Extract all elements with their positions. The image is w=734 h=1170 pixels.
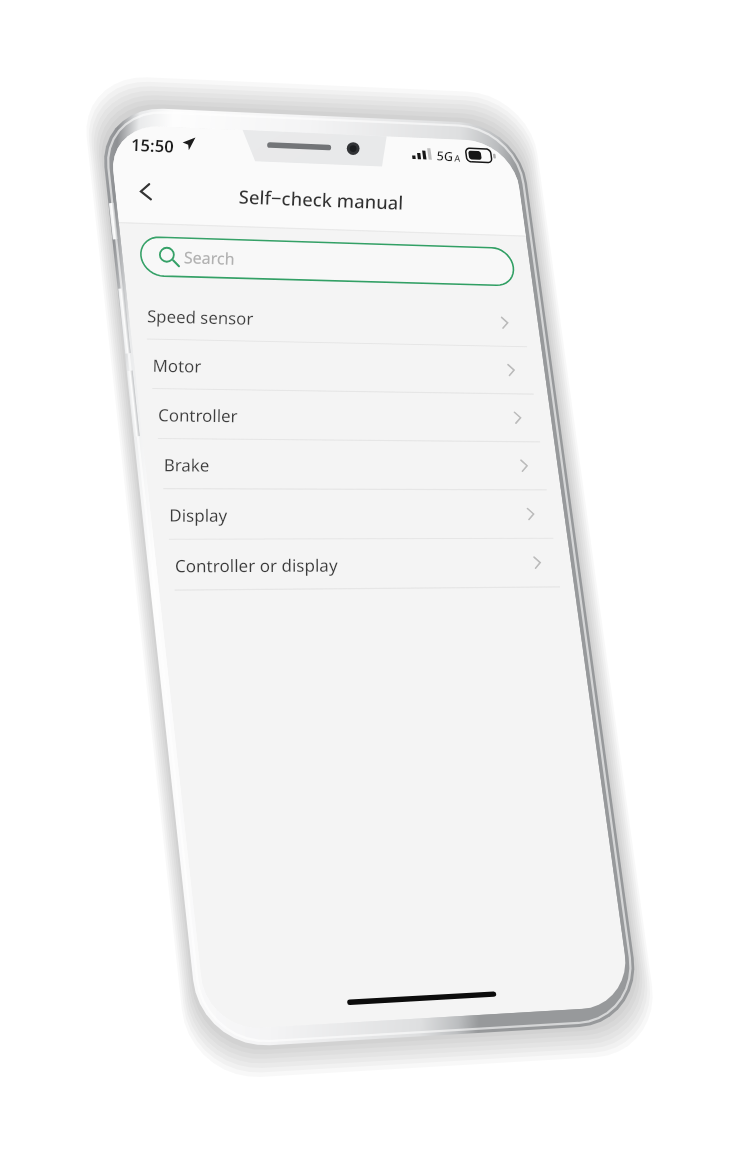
button[interactable]: Self-check manual screen xyxy=(0,0,734,1170)
